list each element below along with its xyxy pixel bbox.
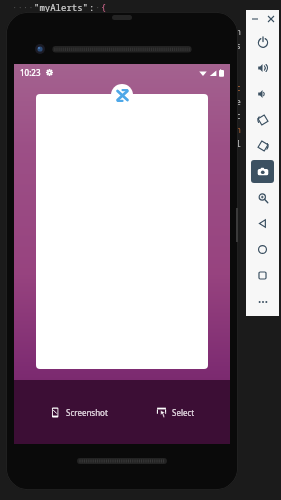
button[interactable]: Screenshot [47,404,111,421]
staticText: · [95,1,101,13]
button[interactable]: Zoom [251,186,274,209]
button[interactable]: Minimize [249,13,260,24]
button[interactable]: Volume down [251,82,274,105]
button[interactable]: More [251,290,274,313]
staticText: Screenshot [66,407,108,418]
button[interactable]: Volume up [251,56,274,79]
staticText: Select [172,407,195,418]
staticText: n [236,26,241,37]
button[interactable]: Rotate right [251,134,274,157]
staticText: : [89,1,95,13]
staticText: s [236,40,241,51]
button[interactable]: Back [251,212,274,235]
button[interactable]: Take screenshot [251,160,274,183]
staticText: 10:23 [20,67,41,78]
staticText: c [236,82,241,93]
staticText: "myAlerts" [34,1,89,13]
button[interactable]: Overview [251,264,274,287]
button[interactable]: Power [251,30,274,53]
button[interactable]: Select [153,404,198,421]
staticText: ···· [12,1,34,13]
button[interactable]: Close [265,13,276,24]
staticText: e [236,96,241,107]
staticText: c [236,110,241,121]
staticText: n [236,124,241,135]
staticText: { [101,1,107,13]
button[interactable]: Home [251,238,274,261]
staticText: l [236,138,241,149]
button[interactable]: App badge [111,84,133,106]
button[interactable]: Rotate left [251,108,274,131]
button[interactable] [36,94,208,369]
